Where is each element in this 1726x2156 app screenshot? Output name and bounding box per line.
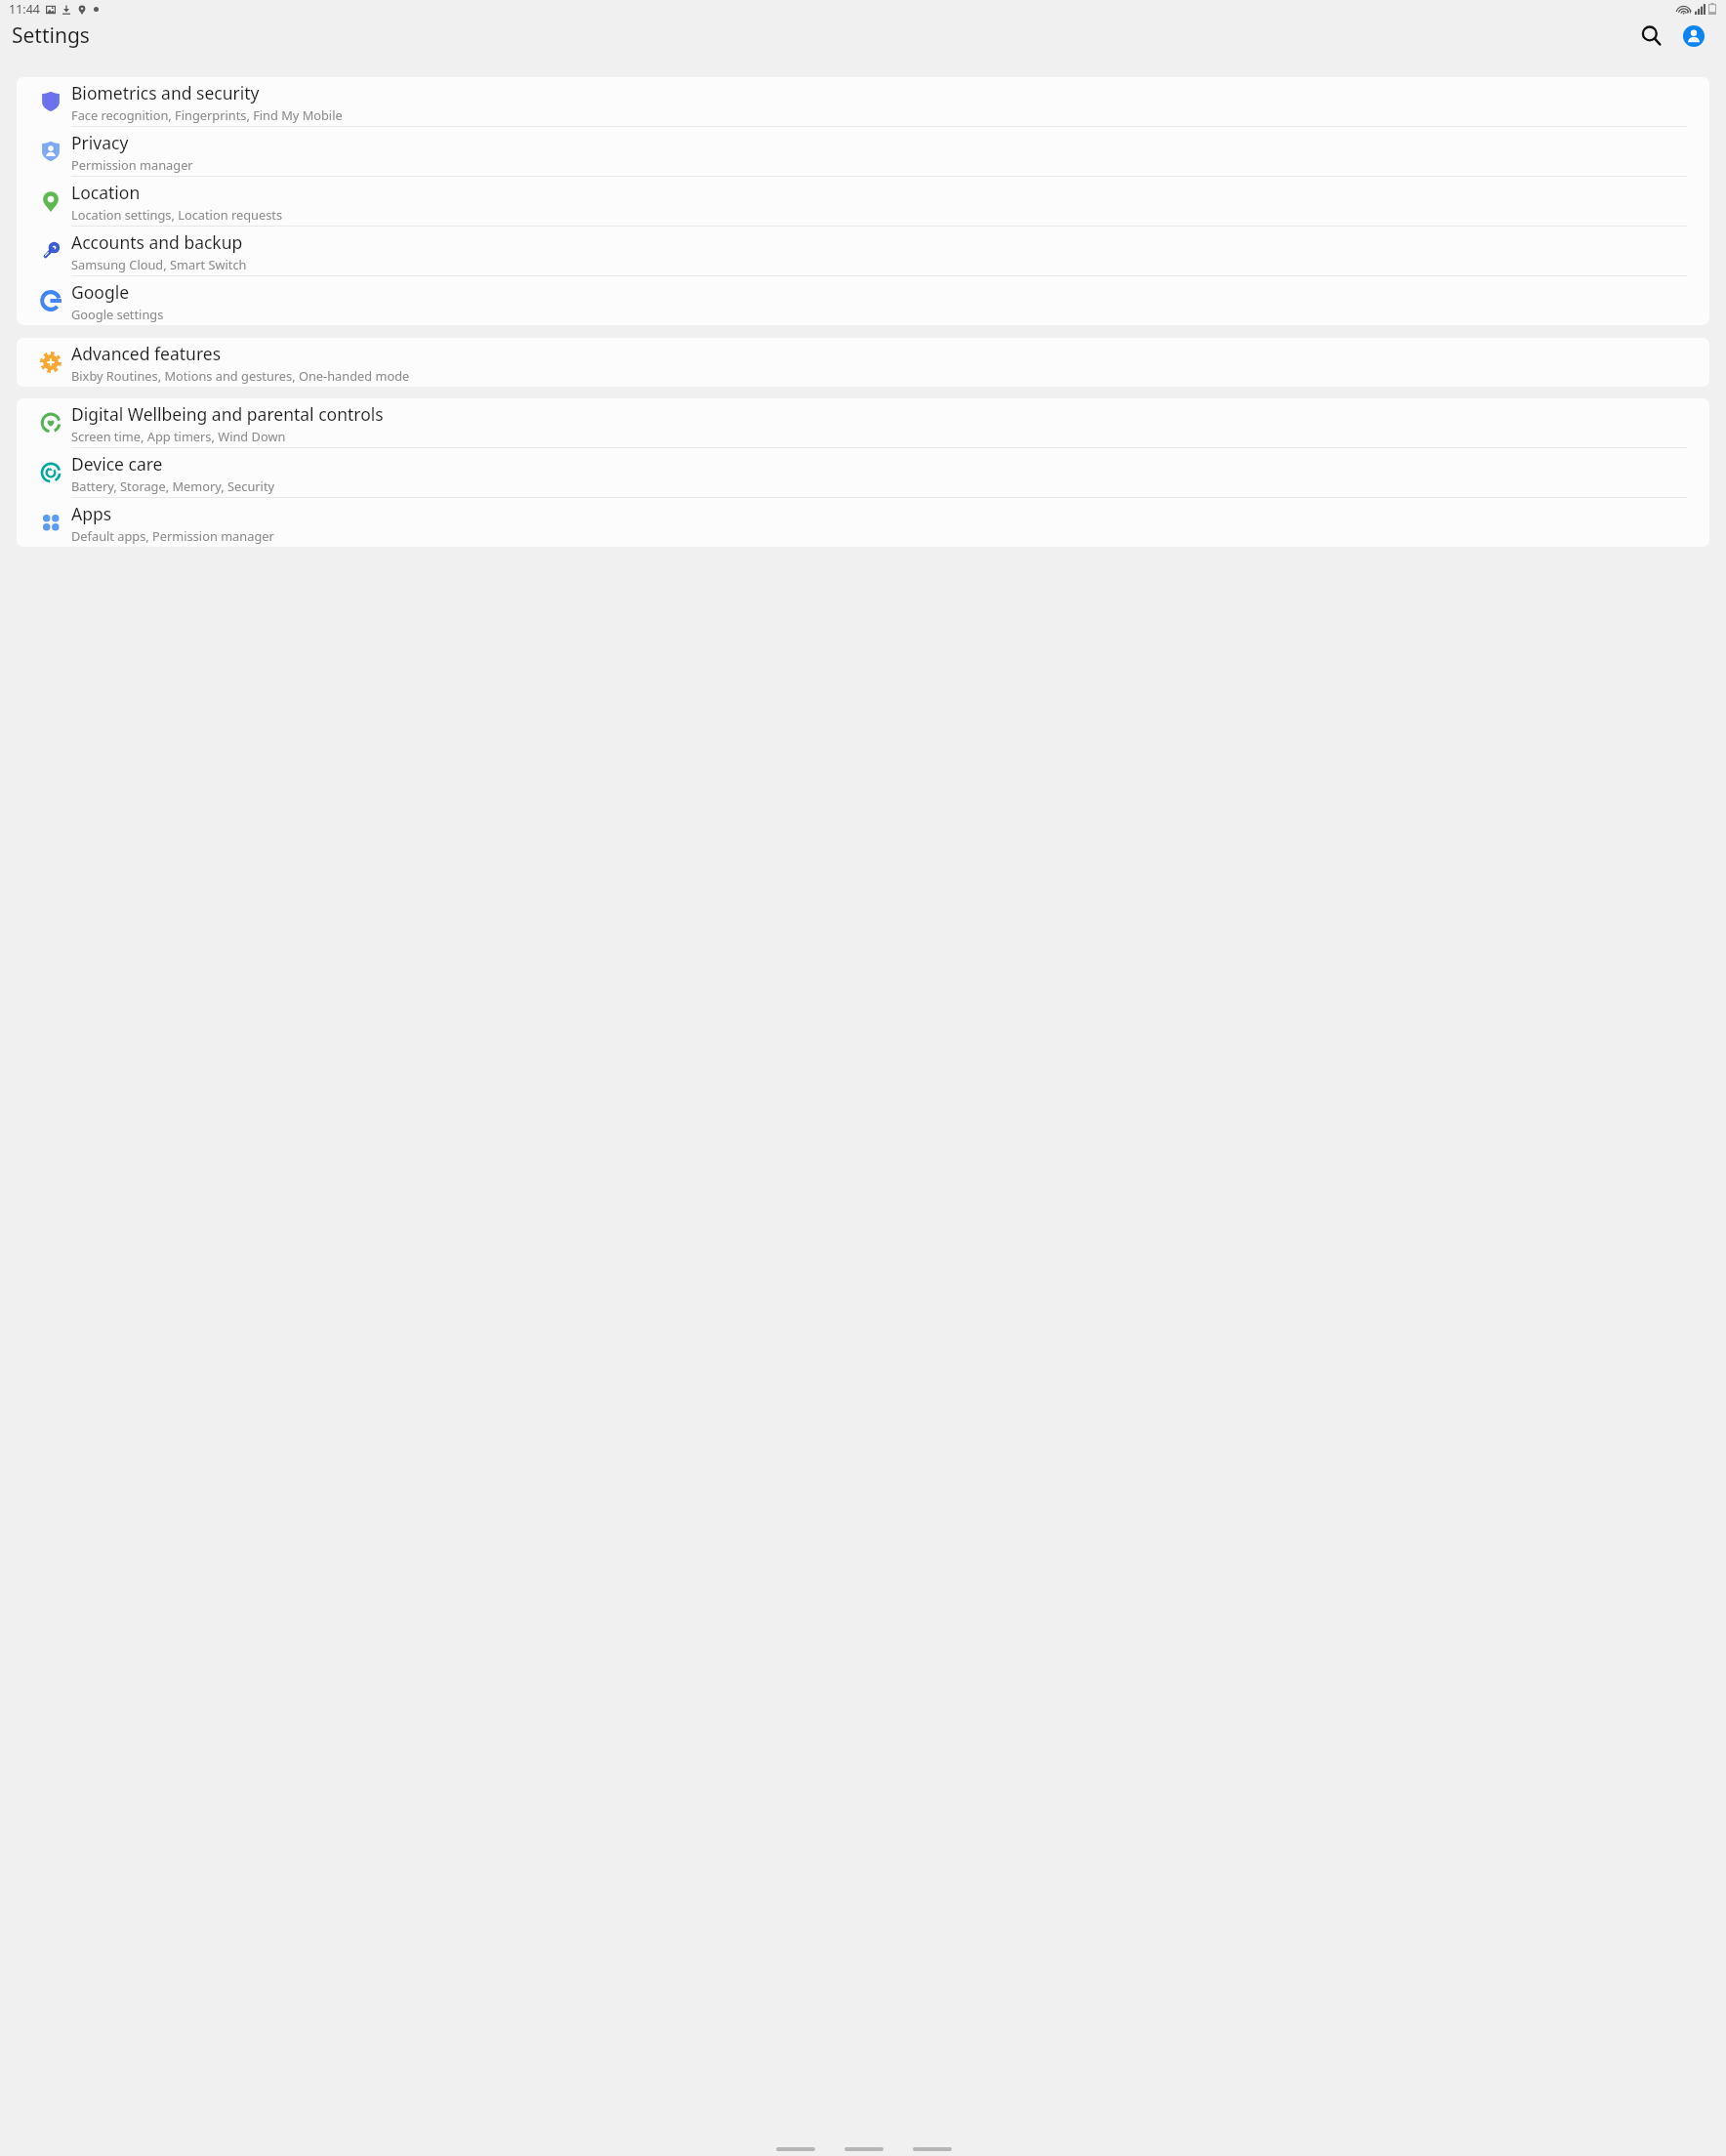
staticText: Default apps, Permission manager [71,527,274,544]
staticText: Settings [12,21,90,50]
button[interactable]: Account [1674,18,1713,54]
button[interactable]: Home [844,2147,884,2151]
staticText: Digital Wellbeing and parental controls [71,402,384,426]
staticText: Privacy [71,131,129,154]
button[interactable]: Location [17,177,1709,226]
button[interactable]: Advanced features [17,338,1709,387]
staticText: Bixby Routines, Motions and gestures, On… [71,367,410,384]
staticText: Device care [71,452,163,476]
button[interactable]: Search [1631,18,1670,54]
button[interactable]: Biometrics and security [17,77,1709,126]
button[interactable]: Google [17,276,1709,325]
button[interactable]: Recents [776,2147,815,2151]
button[interactable]: Back [913,2147,952,2151]
button[interactable]: Privacy [17,127,1709,176]
button[interactable]: Digital Wellbeing and parental controls [17,398,1709,447]
staticText: Face recognition, Fingerprints, Find My … [71,106,343,123]
staticText: Biometrics and security [71,81,260,104]
staticText: 11:44 [9,1,40,18]
staticText: Samsung Cloud, Smart Switch [71,256,247,272]
staticText: Permission manager [71,156,193,173]
staticText: Location settings, Location requests [71,206,283,223]
button[interactable]: Accounts and backup [17,227,1709,275]
staticText: Apps [71,502,112,525]
staticText: Google [71,280,130,304]
staticText: Location [71,181,141,204]
staticText: Advanced features [71,342,222,365]
button[interactable]: Apps [17,498,1709,547]
button[interactable]: Device care [17,448,1709,497]
staticText: Screen time, App timers, Wind Down [71,428,286,444]
staticText: Google settings [71,306,164,322]
staticText: Battery, Storage, Memory, Security [71,477,275,494]
staticText: Accounts and backup [71,230,243,254]
